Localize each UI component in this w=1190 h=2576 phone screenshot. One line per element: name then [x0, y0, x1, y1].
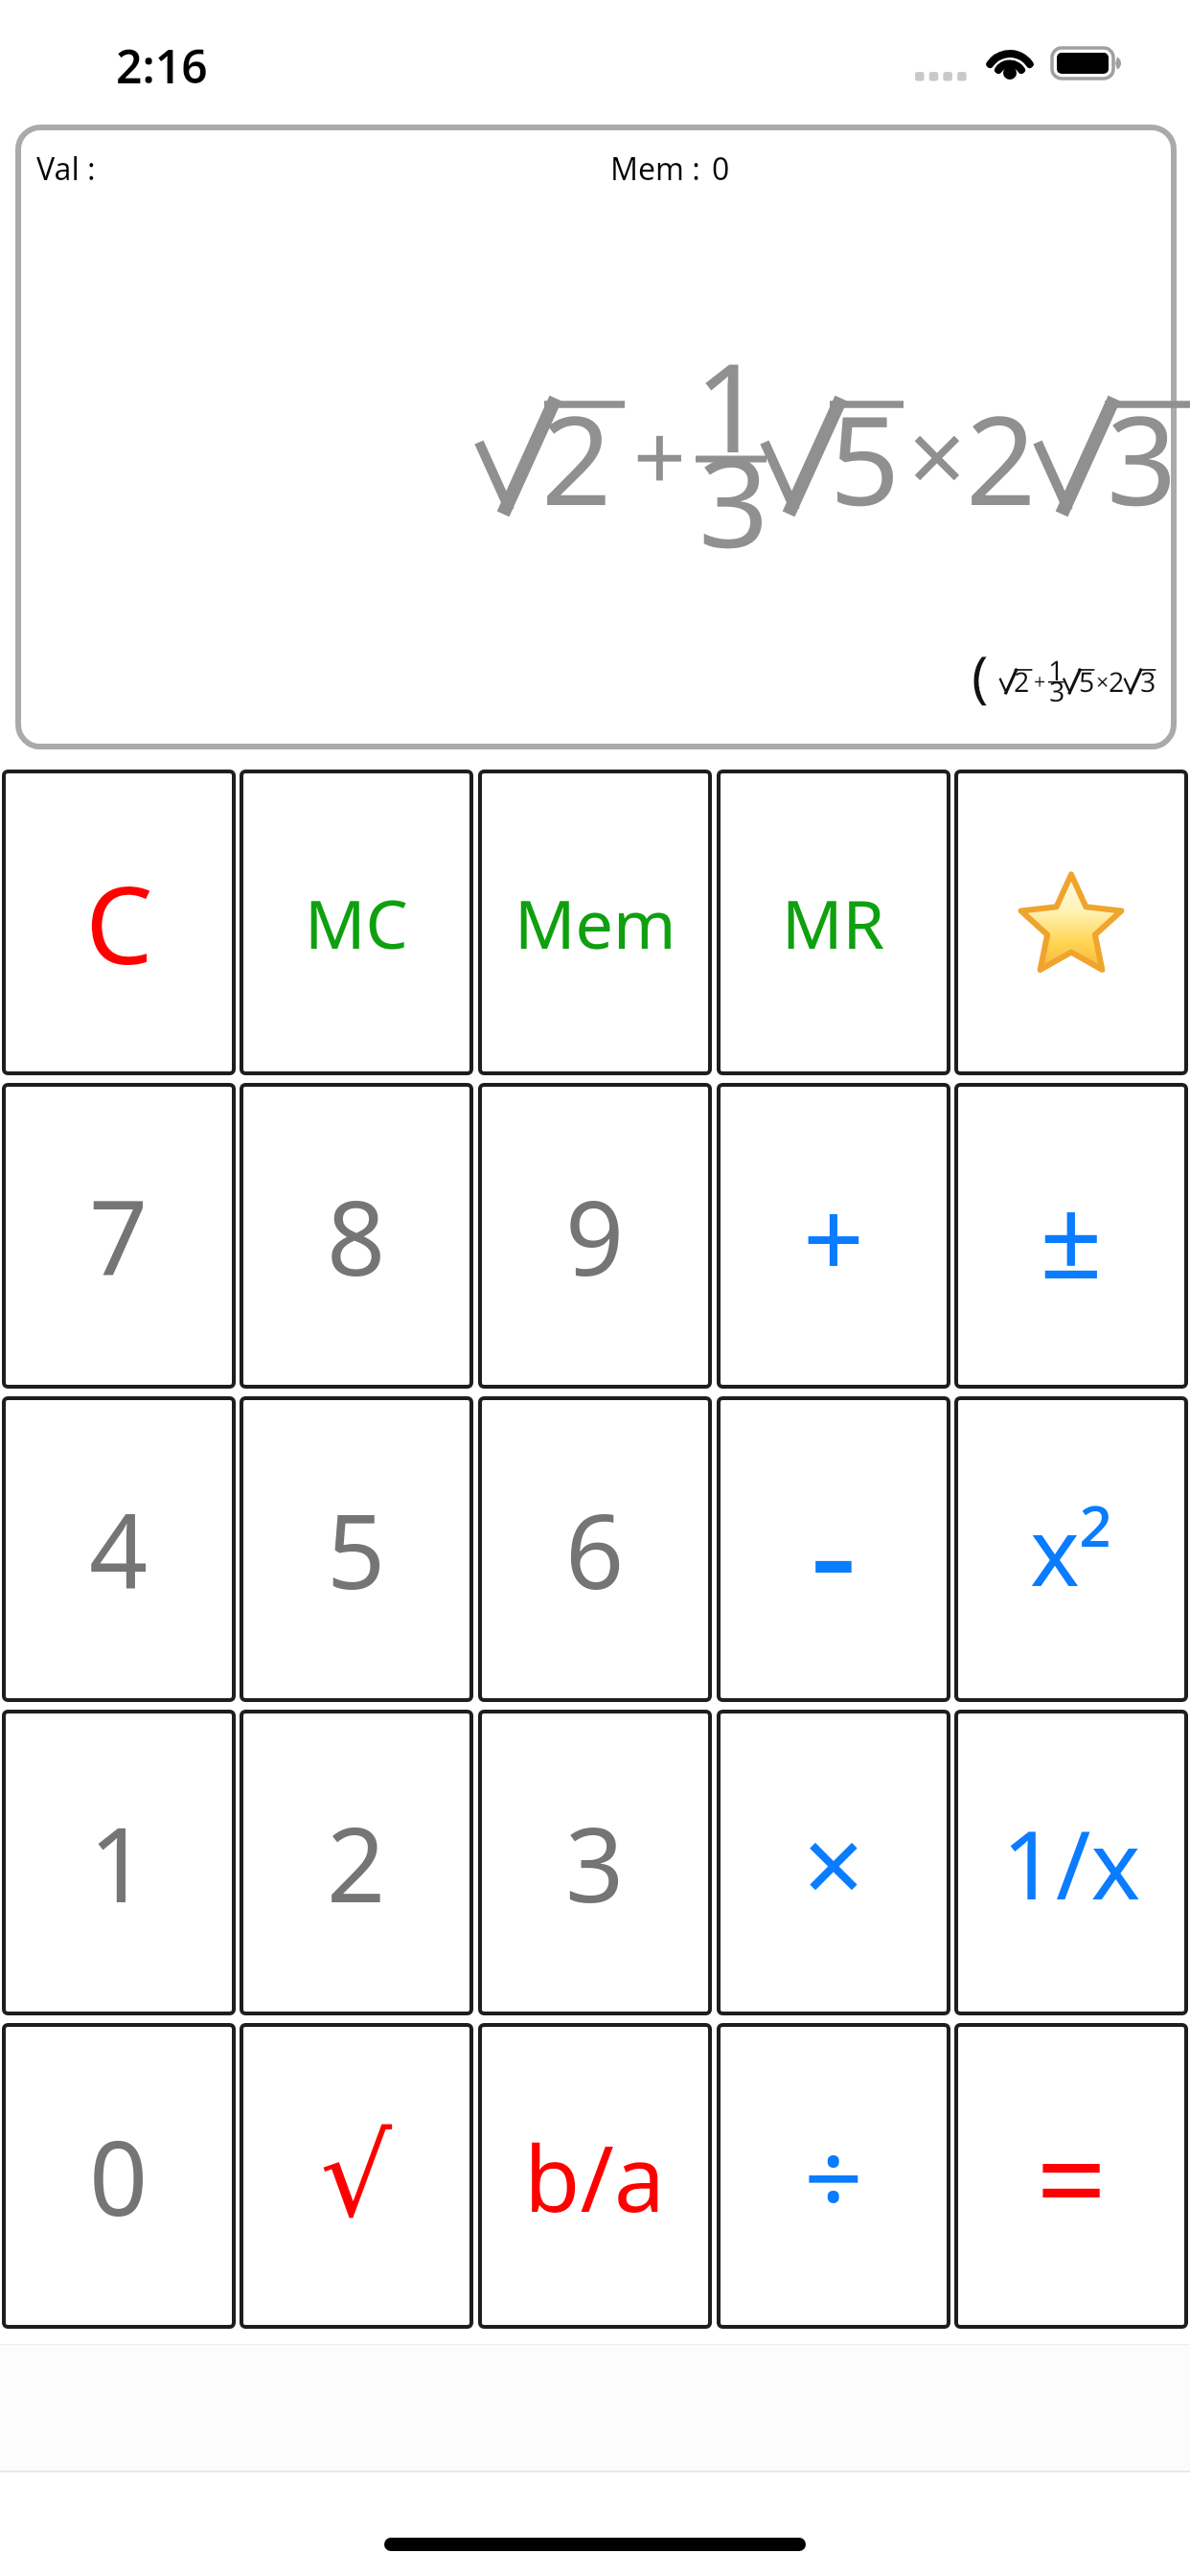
staticText: 1 [89, 1793, 149, 1933]
staticText: ± [1040, 1161, 1103, 1311]
button[interactable] [954, 770, 1188, 1075]
button[interactable]: x² [954, 1396, 1188, 1702]
staticText: 3 [565, 1793, 625, 1933]
staticText: ÷ [804, 2105, 863, 2246]
button[interactable]: 7 [2, 1083, 236, 1389]
button[interactable]: MC [240, 770, 473, 1075]
staticText: Mem [515, 877, 676, 968]
button[interactable]: = [954, 2023, 1188, 2329]
button[interactable]: 5 [240, 1396, 473, 1702]
staticText: 2:16 [116, 34, 208, 97]
button[interactable]: 4 [2, 1396, 236, 1702]
staticText: Val : [36, 148, 96, 190]
staticText: MR [782, 877, 885, 968]
button[interactable]: ÷ [717, 2023, 950, 2329]
button[interactable]: 1/x [954, 1710, 1188, 2015]
staticText: 7 [89, 1166, 149, 1306]
button[interactable]: + [717, 1083, 950, 1389]
button[interactable]: 1 [2, 1710, 236, 2015]
staticText: = [1036, 2091, 1108, 2261]
staticText: 0 [89, 2106, 149, 2246]
button[interactable]: 3 [478, 1710, 712, 2015]
button[interactable]: 8 [240, 1083, 473, 1389]
staticText: Mem : [610, 148, 700, 190]
staticText: 5 [327, 1480, 386, 1620]
button[interactable]: b/a [478, 2023, 712, 2329]
button[interactable]: 2 [240, 1710, 473, 2015]
staticText: × [803, 1789, 865, 1936]
staticText: - [810, 1448, 858, 1650]
button[interactable]: - [717, 1396, 950, 1702]
staticText: x² [1030, 1485, 1113, 1613]
staticText: 6 [565, 1480, 625, 1620]
staticText: 2 [327, 1793, 386, 1933]
staticText: 9 [565, 1166, 625, 1306]
staticText: MC [305, 877, 408, 968]
button[interactable]: 9 [478, 1083, 712, 1389]
staticText: √ [320, 2110, 393, 2242]
button[interactable]: 6 [478, 1396, 712, 1702]
button[interactable]: Mem [478, 770, 712, 1075]
button[interactable]: ± [954, 1083, 1188, 1389]
button[interactable]: √ [240, 2023, 473, 2329]
button[interactable]: MR [717, 770, 950, 1075]
staticText: 1/x [1002, 1799, 1141, 1926]
staticText: 4 [89, 1480, 149, 1620]
button[interactable]: 0 [2, 2023, 236, 2329]
staticText: b/a [524, 2114, 666, 2238]
staticText: 8 [327, 1166, 386, 1306]
staticText: + [803, 1162, 865, 1309]
staticText: C [85, 849, 153, 996]
button[interactable]: × [717, 1710, 950, 2015]
button[interactable]: C [2, 770, 236, 1075]
staticText: 0 [712, 148, 730, 190]
